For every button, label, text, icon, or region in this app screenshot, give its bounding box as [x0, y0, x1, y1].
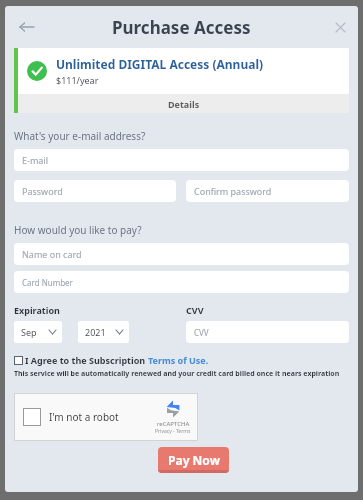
button[interactable]: Name on card: [14, 243, 349, 265]
button[interactable]: E-mail: [14, 149, 349, 171]
button[interactable]: Back: [14, 14, 40, 40]
staticText: 2021: [85, 326, 106, 338]
staticText: Expiration: [14, 304, 60, 316]
button[interactable]: Details: [18, 94, 349, 113]
button[interactable]: Terms of Use.: [148, 354, 209, 366]
button[interactable]: I'm not a robot: [14, 393, 198, 441]
staticText: How would you like to pay?: [14, 223, 142, 237]
button[interactable]: 2021: [78, 321, 129, 343]
button[interactable]: Sep: [14, 321, 62, 343]
button[interactable]: I Agree to the Subscription: [14, 354, 209, 366]
button[interactable]: Confirm password: [186, 180, 349, 202]
staticText: CVV: [186, 304, 204, 316]
button[interactable]: CVV: [186, 321, 349, 343]
staticText: $111/year: [56, 74, 99, 86]
staticText: I Agree to the Subscription: [25, 354, 148, 366]
staticText: Card Number: [22, 277, 73, 288]
staticText: Unlimited DIGITAL Access (Annual): [56, 56, 264, 72]
staticText: This service will be automatically renew…: [14, 369, 340, 379]
staticText: reCAPTCHA: [157, 420, 190, 428]
button[interactable]: Pay Now: [158, 447, 229, 473]
staticText: E-mail: [22, 154, 49, 166]
staticText: Confirm password: [194, 185, 272, 197]
staticText: Pay Now: [168, 452, 220, 468]
staticText: Details: [168, 98, 200, 110]
staticText: Sep: [21, 326, 37, 338]
button[interactable]: Close: [329, 16, 351, 38]
staticText: I'm not a robot: [49, 410, 119, 424]
staticText: Purchase Access: [112, 16, 251, 39]
button[interactable]: Unlimited DIGITAL Access (Annual): [14, 48, 349, 113]
staticText: Privacy - Terms: [155, 428, 191, 435]
staticText: What's your e-mail address?: [14, 129, 146, 143]
button[interactable]: Password: [14, 180, 176, 202]
staticText: CVV: [194, 327, 209, 338]
staticText: Name on card: [22, 248, 82, 260]
staticText: Password: [22, 185, 63, 197]
button[interactable]: Card Number: [14, 271, 349, 293]
